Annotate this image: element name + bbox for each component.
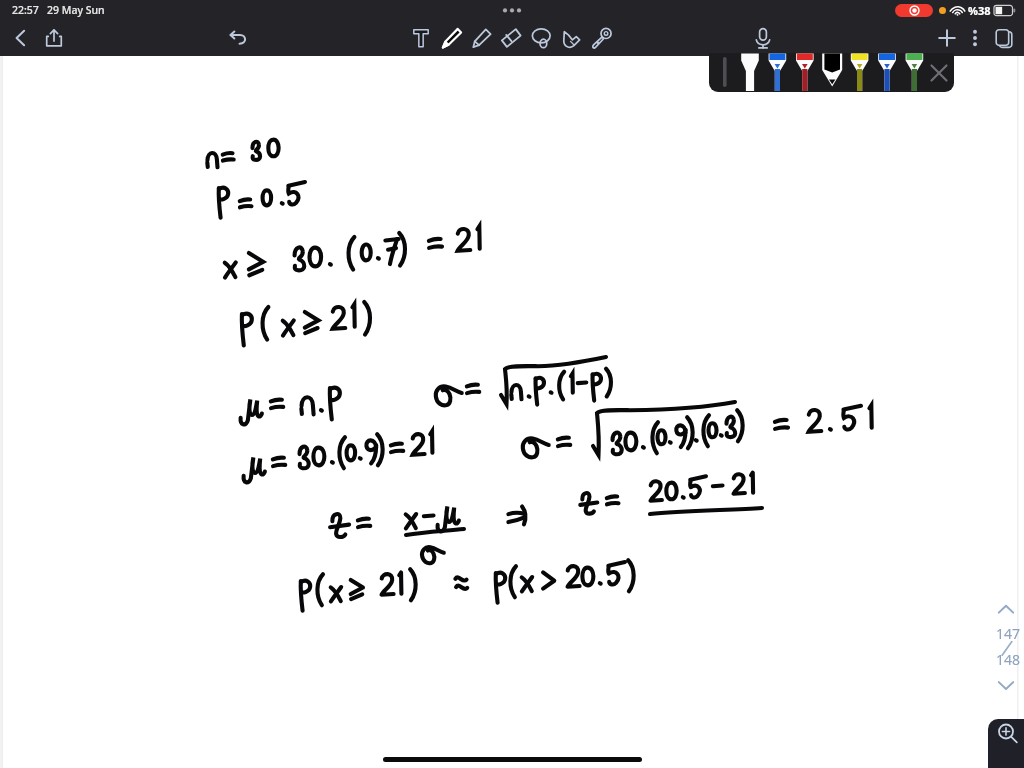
button[interactable]: Record audio — [750, 25, 776, 51]
button[interactable]: Zoom — [988, 719, 1024, 768]
button[interactable]: Highlighter — [466, 20, 496, 56]
staticText: 147 — [996, 624, 1021, 643]
button[interactable]: Pages — [991, 25, 1017, 51]
button[interactable]: Add page — [934, 25, 960, 51]
staticText: 148 — [996, 650, 1021, 669]
staticText: 22:57 29 May Sun — [12, 3, 105, 17]
button[interactable]: Next page — [994, 676, 1018, 694]
button[interactable]: Back — [8, 25, 34, 51]
button[interactable]: More options — [962, 25, 988, 51]
button[interactable]: Hand — [556, 20, 586, 56]
button[interactable]: Share — [41, 25, 67, 51]
button[interactable]: Lasso — [526, 20, 556, 56]
staticText: %38 — [968, 3, 991, 18]
button[interactable]: Eraser — [496, 20, 526, 56]
button[interactable]: Text — [406, 20, 436, 56]
button[interactable]: Undo — [225, 25, 251, 51]
button[interactable]: Previous page — [994, 600, 1018, 618]
button[interactable]: Pen — [436, 20, 466, 56]
button[interactable]: Shapes — [586, 20, 616, 56]
